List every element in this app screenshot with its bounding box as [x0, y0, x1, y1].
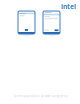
staticText: lorem ipsum dolor sit amet consectetur — [14, 94, 68, 98]
staticText: caption one — [22, 35, 30, 37]
staticText: caption two — [48, 35, 55, 37]
staticText: intel — [61, 2, 76, 11]
